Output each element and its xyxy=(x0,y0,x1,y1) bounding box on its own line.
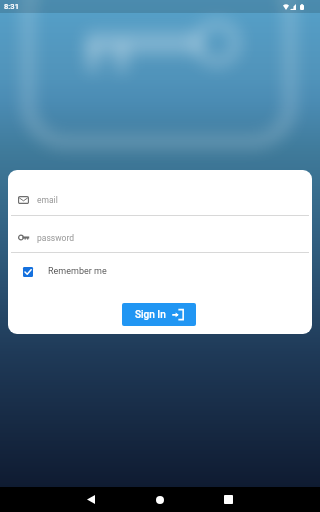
staticText: 8:31 xyxy=(4,2,19,11)
staticText: password xyxy=(37,233,75,243)
button[interactable]: Back xyxy=(79,487,103,512)
button[interactable]: Home xyxy=(148,487,172,512)
button[interactable]: Recent apps xyxy=(216,487,240,512)
staticText: Sign In xyxy=(135,309,166,321)
staticText: email xyxy=(37,195,58,205)
staticText: Remember me xyxy=(48,266,107,277)
button[interactable]: password xyxy=(8,222,312,253)
button[interactable]: Remember me xyxy=(8,256,312,287)
button[interactable]: email xyxy=(8,184,312,215)
button[interactable]: Sign In xyxy=(122,303,196,326)
